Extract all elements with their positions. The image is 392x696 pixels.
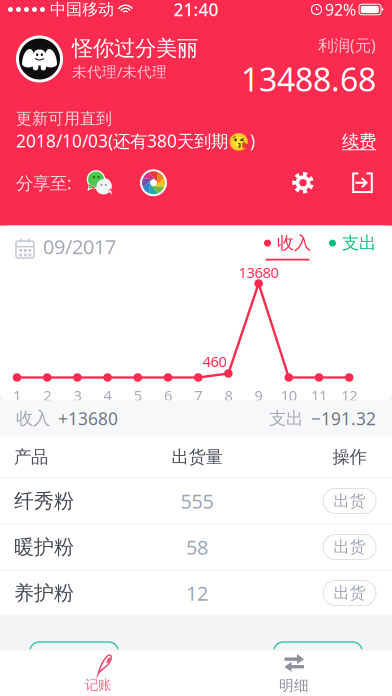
staticText: +13680 xyxy=(58,407,118,430)
staticText: 13488.68 xyxy=(241,58,376,100)
button[interactable]: 设置 xyxy=(292,172,314,194)
staticText: 收入 xyxy=(16,408,50,429)
staticText: 58 xyxy=(186,534,208,560)
staticText: 9 xyxy=(255,385,263,405)
staticText: 5 xyxy=(134,385,142,405)
staticText: 12 xyxy=(186,580,208,606)
staticText: 中国移动 xyxy=(50,0,114,19)
staticText: 收入 xyxy=(277,232,311,254)
button[interactable]: 收入 xyxy=(264,232,311,261)
staticText: 92% xyxy=(325,0,356,20)
staticText: 1 xyxy=(13,385,21,405)
staticText: 分享至: xyxy=(16,171,72,194)
staticText: 续费 xyxy=(342,131,376,152)
staticText: 利润(元) xyxy=(318,34,376,56)
staticText: 7 xyxy=(194,385,202,405)
staticText: 记账 xyxy=(85,677,111,693)
staticText: −191.32 xyxy=(311,407,376,430)
staticText: 更新可用直到 xyxy=(16,109,112,129)
staticText: 8 xyxy=(224,385,232,405)
staticText: 出货 xyxy=(333,537,365,557)
button[interactable]: 记账 xyxy=(0,649,196,696)
staticText: 支出 xyxy=(269,408,303,429)
staticText: 6 xyxy=(164,385,172,405)
staticText: 支出 xyxy=(342,232,376,254)
staticText: 出货量 xyxy=(171,446,222,468)
staticText: 2 xyxy=(43,385,51,405)
button[interactable]: 出货 xyxy=(323,488,376,513)
button[interactable]: 续费 xyxy=(342,132,376,150)
staticText: 21:40 xyxy=(173,0,218,21)
button[interactable]: 出货 xyxy=(323,534,376,559)
staticText: 11 xyxy=(311,385,327,405)
staticText: 4 xyxy=(104,385,112,405)
staticText: 3 xyxy=(73,385,81,405)
staticText: 460 xyxy=(202,351,226,371)
staticText: 2018/10/03(还有380天到期😘) xyxy=(16,129,255,152)
staticText: 养护粉 xyxy=(14,581,74,605)
staticText: 13680 xyxy=(239,262,279,282)
button[interactable]: 明细 xyxy=(196,649,392,696)
staticText: 09/2017 xyxy=(43,233,116,260)
button[interactable]: 出货 xyxy=(323,580,376,605)
staticText: 未代理/未代理 xyxy=(72,62,167,81)
staticText: 出货 xyxy=(333,491,365,511)
staticText: 操作 xyxy=(332,446,366,468)
button[interactable]: 分享到微信 xyxy=(86,169,113,196)
staticText: 纤秀粉 xyxy=(14,489,74,513)
staticText: 出货 xyxy=(333,583,365,603)
staticText: 10 xyxy=(281,385,297,405)
staticText: 555 xyxy=(180,488,213,514)
staticText: 明细 xyxy=(279,676,309,694)
button[interactable]: 退出登录 xyxy=(352,172,373,193)
staticText: 12 xyxy=(341,385,357,405)
staticText: 怪你过分美丽 xyxy=(72,35,198,62)
button[interactable]: 分享到朋友圈 xyxy=(140,169,167,196)
button[interactable]: 支出 xyxy=(311,232,376,261)
staticText: 暖护粉 xyxy=(14,535,74,559)
staticText: 产品 xyxy=(14,446,48,468)
